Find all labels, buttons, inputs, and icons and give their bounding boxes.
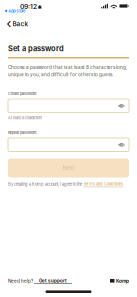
button[interactable]: Terms and Conditions — [83, 182, 123, 187]
staticText: Choose a password that is at least 8 cha… — [8, 64, 127, 77]
staticText: Next — [62, 165, 74, 171]
button[interactable]: Get support — [34, 278, 72, 284]
staticText: Back — [13, 20, 29, 28]
staticText: Set a password — [8, 44, 64, 53]
staticText: Komp — [116, 278, 129, 284]
staticText: At least 8 characters — [8, 116, 42, 120]
staticText: Need help? — [8, 278, 34, 284]
staticText: App Store — [8, 8, 25, 13]
staticText: Get support — [39, 278, 67, 283]
staticText: Terms and Conditions — [83, 182, 123, 187]
staticText: 09:12 — [20, 3, 37, 11]
button[interactable]: Back — [0, 19, 137, 29]
button[interactable]: Next — [8, 159, 129, 178]
staticText: Create password — [8, 91, 36, 96]
staticText: Repeat password — [8, 130, 36, 135]
staticText: By creating a Komp account, I agree to t… — [8, 182, 83, 187]
